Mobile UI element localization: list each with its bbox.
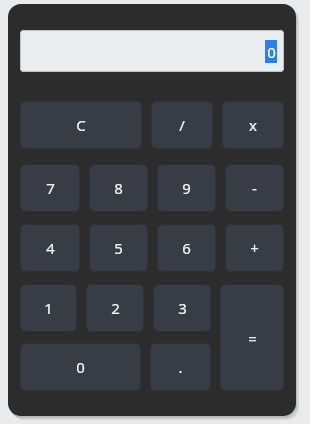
button[interactable]: = [220, 284, 284, 391]
staticText: 8 [114, 178, 123, 198]
staticText: 2 [111, 298, 120, 318]
staticText: x [249, 115, 257, 135]
button[interactable]: x [222, 101, 284, 149]
button[interactable]: 4 [20, 224, 80, 272]
staticText: . [178, 357, 183, 377]
button[interactable]: - [225, 164, 284, 212]
button[interactable]: 1 [20, 284, 77, 332]
staticText: 9 [182, 178, 191, 198]
button[interactable]: 2 [86, 284, 144, 332]
staticText: 1 [44, 298, 53, 318]
button[interactable]: 7 [20, 164, 80, 212]
staticText: = [248, 328, 257, 348]
button[interactable]: 8 [89, 164, 148, 212]
button[interactable]: 3 [153, 284, 211, 332]
button[interactable]: / [151, 101, 213, 149]
button[interactable]: + [225, 224, 284, 272]
staticText: 6 [182, 238, 191, 258]
staticText: C [76, 115, 86, 135]
staticText: 0 [267, 42, 276, 62]
staticText: 4 [46, 238, 55, 258]
staticText: - [252, 178, 257, 198]
staticText: + [250, 238, 259, 258]
button[interactable]: 5 [89, 224, 148, 272]
button[interactable]: 6 [157, 224, 216, 272]
button[interactable]: C [20, 101, 142, 149]
staticText: 3 [178, 298, 187, 318]
button[interactable]: 0 [20, 30, 284, 72]
staticText: 0 [76, 357, 85, 377]
staticText: / [179, 115, 185, 135]
button[interactable]: . [150, 343, 211, 391]
staticText: 7 [46, 178, 55, 198]
button[interactable]: 9 [157, 164, 216, 212]
button[interactable]: 0 [20, 343, 141, 391]
staticText: 5 [114, 238, 123, 258]
